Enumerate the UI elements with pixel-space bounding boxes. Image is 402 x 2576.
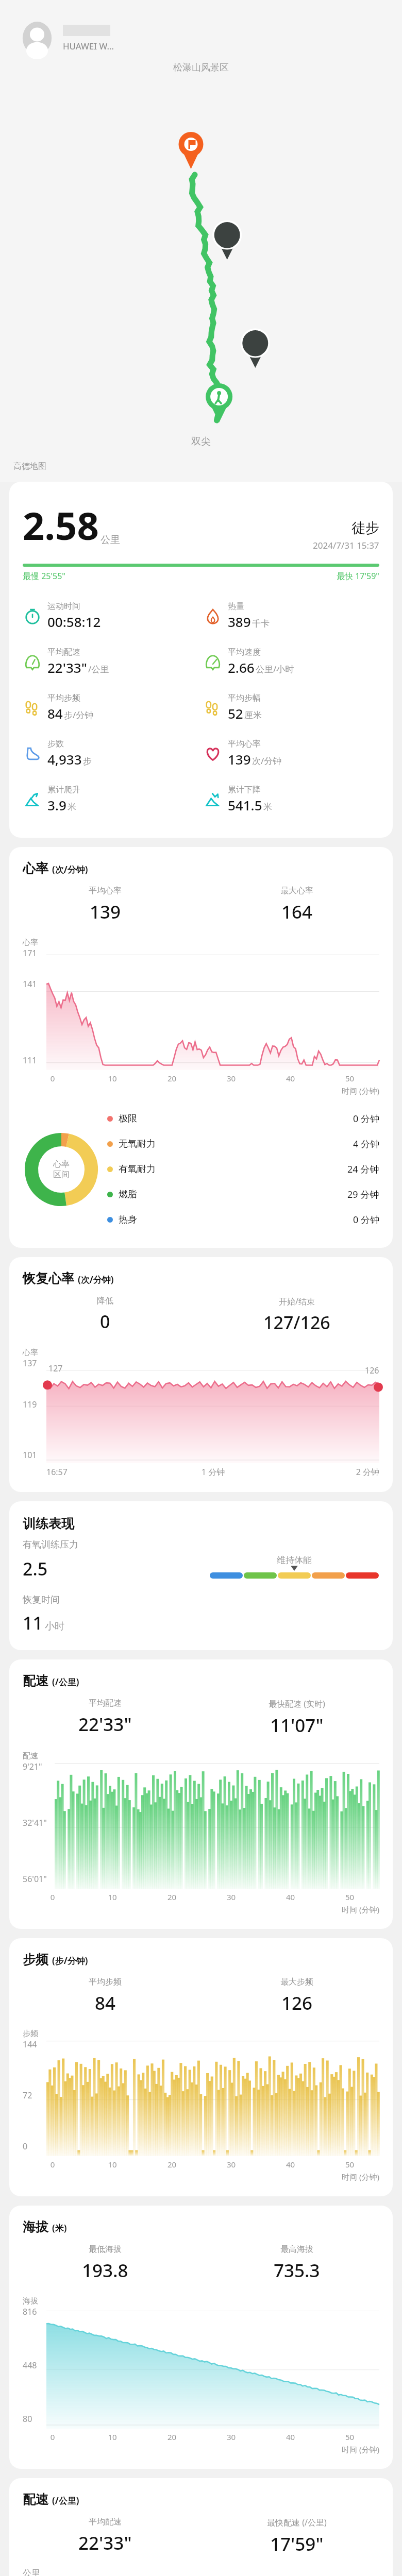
staticText: 20	[142, 2432, 202, 2442]
staticText: 海拔	[23, 2219, 48, 2235]
staticText: 144	[23, 2039, 37, 2050]
staticText: 30	[202, 1892, 261, 1902]
staticText: (步/分钟)	[52, 1955, 88, 1967]
staticText: 步频	[23, 1952, 48, 1968]
staticText: 运动时间	[47, 601, 80, 612]
staticText: 9'21"	[23, 1761, 42, 1772]
button[interactable]: 热量	[203, 598, 383, 634]
staticText: 最快配速 (实时)	[269, 1698, 325, 1709]
staticText: 最高海拔	[280, 2244, 313, 2255]
staticText: 最大步频	[280, 1977, 313, 1987]
staticText: (次/分钟)	[78, 1274, 114, 1285]
staticText: 0	[23, 2432, 82, 2442]
staticText: 0	[23, 2159, 82, 2170]
button[interactable]: 步数	[23, 736, 203, 771]
staticText: 维持体能	[277, 1555, 312, 1566]
staticText: 30	[202, 1073, 261, 1083]
staticText: /公里	[88, 663, 109, 675]
staticText: (次/分钟)	[52, 863, 88, 875]
staticText: 时间 (分钟)	[23, 1904, 379, 1914]
staticText: 时间 (分钟)	[23, 2172, 379, 2182]
staticText: (/公里)	[52, 1676, 79, 1688]
staticText: 22'33"	[78, 1712, 132, 1737]
staticText: 步	[83, 756, 92, 767]
staticText: 00:58:12	[47, 613, 101, 631]
staticText: 2.5	[23, 1557, 48, 1581]
staticText: 平均配速	[89, 2517, 122, 2527]
staticText: 最快配速 (/公里)	[267, 2517, 327, 2528]
staticText: HUAWEI W…	[63, 40, 114, 52]
staticText: 10	[82, 2432, 142, 2442]
staticText: 10	[82, 1073, 142, 1083]
staticText: 10	[82, 2159, 142, 2170]
staticText: 公里/小时	[256, 663, 294, 675]
staticText: 步/分钟	[64, 709, 94, 721]
staticText: 84	[47, 704, 63, 722]
staticText: 16:57	[46, 1466, 158, 1478]
staticText: 最大心率	[280, 886, 313, 896]
staticText: 24 分钟	[347, 1163, 379, 1176]
staticText: 0	[100, 1310, 110, 1333]
staticText: 4,933	[47, 750, 82, 768]
staticText: 127	[48, 1363, 63, 1374]
staticText: 开始/结束	[279, 1296, 315, 1307]
staticText: 164	[281, 900, 313, 924]
staticText: 公里	[100, 534, 120, 546]
staticText: 平均配速	[89, 1698, 122, 1708]
staticText: 平均心率	[228, 739, 261, 749]
staticText: 171	[23, 947, 37, 959]
staticText: 20	[142, 2159, 202, 2170]
staticText: 千卡	[252, 618, 270, 629]
staticText: 2 分钟	[269, 1466, 379, 1478]
button[interactable]: 平均步幅	[203, 690, 383, 725]
staticText: 193.8	[82, 2258, 128, 2283]
button[interactable]: 累计爬升	[23, 782, 203, 817]
staticText: 次/分钟	[252, 755, 282, 767]
staticText: 小时	[45, 1620, 64, 1633]
staticText: 11'07"	[270, 1713, 324, 1738]
staticText: 时间 (分钟)	[23, 1086, 379, 1096]
staticText: 72	[23, 2090, 32, 2101]
staticText: 步数	[47, 739, 64, 749]
staticText: 0	[23, 1073, 82, 1083]
staticText: 22'33"	[78, 2531, 132, 2555]
button[interactable]: 累计下降	[203, 782, 383, 817]
button[interactable]: 运动时间	[23, 598, 203, 634]
staticText: 最慢 25'55"	[23, 570, 65, 582]
staticText: 燃脂	[119, 1189, 137, 1200]
staticText: 平均配速	[47, 647, 80, 657]
staticText: 101	[23, 1449, 37, 1461]
staticText: 累计爬升	[47, 785, 80, 795]
staticText: 区间	[53, 1170, 70, 1180]
staticText: 训练表现	[23, 1516, 74, 1532]
staticText: 双尖	[191, 435, 211, 448]
staticText: 448	[23, 2360, 37, 2371]
staticText: 米	[263, 802, 272, 812]
button[interactable]: 平均配速	[23, 644, 203, 680]
staticText: 最快 17'59"	[337, 570, 379, 582]
staticText: 389	[228, 613, 251, 631]
staticText: 海拔	[23, 2296, 38, 2306]
staticText: 米	[68, 802, 76, 812]
staticText: 恢复时间	[23, 1594, 60, 1606]
staticText: 127/126	[263, 1311, 330, 1334]
button[interactable]: 平均速度	[203, 644, 383, 680]
staticText: 141	[23, 978, 37, 990]
staticText: 80	[23, 2413, 32, 2425]
staticText: 735.3	[274, 2258, 320, 2283]
staticText: 平均步频	[47, 693, 80, 703]
staticText: 111	[23, 1055, 37, 1066]
staticText: 0	[23, 2141, 28, 2152]
button[interactable]: 平均步频	[23, 690, 203, 725]
staticText: 2024/7/31 15:37	[313, 539, 379, 551]
staticText: 累计下降	[228, 785, 261, 795]
staticText: 17'59"	[270, 2532, 324, 2556]
button[interactable]: 平均心率	[203, 736, 383, 771]
staticText: 热身	[119, 1214, 137, 1226]
staticText: 有氧耐力	[119, 1163, 156, 1175]
staticText: 11	[23, 1611, 43, 1635]
staticText: 816	[23, 2306, 37, 2317]
staticText: 40	[261, 2432, 320, 2442]
staticText: 配速	[23, 1751, 38, 1761]
staticText: 50	[320, 1892, 379, 1902]
